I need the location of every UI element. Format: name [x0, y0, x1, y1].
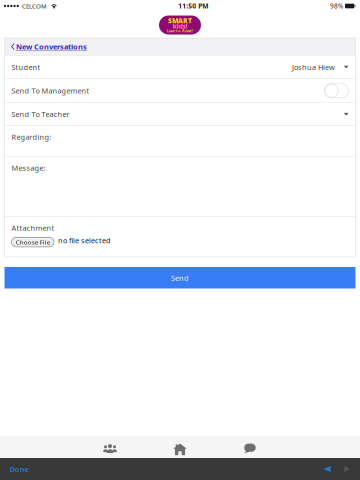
- button[interactable]: Messages: [215, 436, 285, 458]
- staticText: no file selected: [58, 235, 111, 245]
- staticText: Joshua Hiew: [292, 62, 335, 72]
- button[interactable]: Next field: [337, 458, 357, 480]
- button[interactable]: Home: [145, 436, 215, 458]
- button[interactable]: Students: [75, 436, 145, 458]
- staticText: Send To Management: [11, 86, 89, 96]
- button[interactable]: Send: [4, 267, 355, 288]
- staticText: 11:50 PM: [178, 1, 208, 11]
- staticText: Regarding:: [11, 132, 51, 142]
- staticText: Love to Read!: [167, 28, 193, 33]
- staticText: Choose File: [16, 238, 50, 246]
- staticText: CELCOM: [22, 2, 47, 10]
- staticText: kids!: [172, 22, 187, 31]
- button[interactable]: Student: [4, 56, 355, 78]
- staticText: Message:: [11, 163, 45, 173]
- staticText: SMART: [168, 16, 192, 25]
- button[interactable]: Done: [0, 458, 50, 480]
- staticText: Send To Teacher: [11, 109, 69, 119]
- button[interactable]: Send To Teacher: [4, 103, 355, 125]
- staticText: Attachment: [11, 223, 54, 233]
- staticText: New Conversations: [16, 41, 87, 52]
- button[interactable]: Choose File: [11, 235, 54, 247]
- staticText: 98%: [330, 2, 343, 10]
- staticText: Done: [10, 464, 29, 474]
- button[interactable]: New Conversations: [4, 38, 355, 55]
- staticText: Send: [171, 273, 189, 283]
- staticText: Student: [11, 62, 40, 72]
- button[interactable]: Previous field: [317, 458, 337, 480]
- button[interactable]: Send To Management: [324, 83, 348, 98]
